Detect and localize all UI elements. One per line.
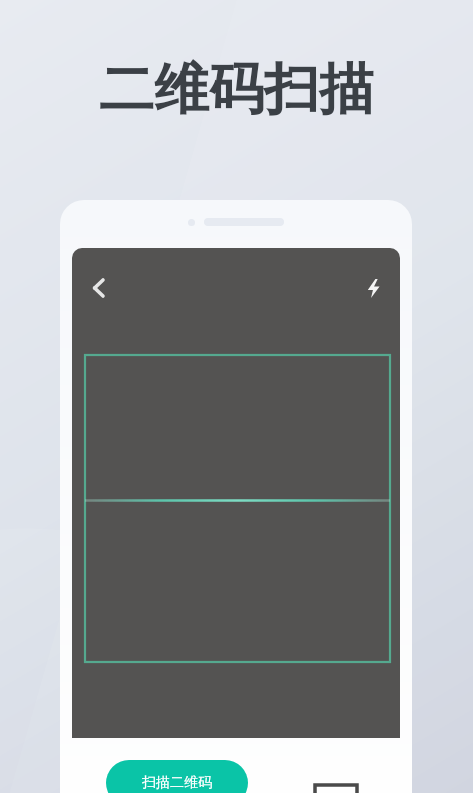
staticText: 二维码扫描 [99,55,374,124]
button[interactable]: Flash [351,266,395,310]
button[interactable]: Back [77,266,121,310]
staticText: 扫描二维码 [142,774,212,792]
button[interactable]: 扫描二维码 [106,760,248,793]
